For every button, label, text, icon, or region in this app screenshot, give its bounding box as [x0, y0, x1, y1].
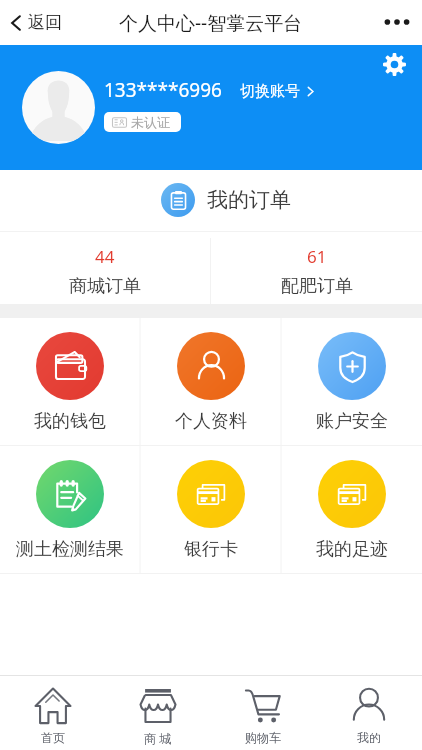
staticText: 我的	[357, 730, 381, 745]
staticText: 商城订单	[69, 275, 141, 298]
button[interactable]: 切换账号	[240, 82, 316, 103]
button[interactable]: 账户安全	[281, 318, 422, 446]
button[interactable]: 返回	[2, 6, 68, 39]
button[interactable]: More options	[378, 4, 416, 42]
button[interactable]: 个人资料	[140, 318, 281, 446]
button[interactable]: Settings	[377, 47, 411, 81]
button[interactable]: 银行卡	[140, 446, 281, 574]
staticText: 商 城	[144, 730, 172, 746]
staticText: 我的订单	[207, 187, 291, 213]
button[interactable]: 未认证	[104, 112, 181, 132]
staticText: 切换账号	[240, 82, 300, 101]
staticText: 个人中心--智掌云平台	[119, 10, 303, 36]
button[interactable]: 61	[211, 238, 422, 304]
staticText: 返回	[28, 12, 62, 33]
button[interactable]: 我的	[316, 676, 422, 750]
staticText: 我的钱包	[34, 410, 106, 433]
staticText: 133****6996	[104, 77, 222, 103]
button[interactable]: 我的订单	[0, 183, 422, 217]
button[interactable]: 首页	[0, 676, 105, 750]
staticText: 配肥订单	[281, 275, 353, 298]
button[interactable]: 购物车	[210, 676, 316, 750]
staticText: 账户安全	[316, 410, 388, 433]
staticText: 未认证	[131, 114, 170, 130]
staticText: 44	[95, 245, 115, 268]
staticText: 我的足迹	[316, 538, 388, 561]
button[interactable]: 测土检测结果	[0, 446, 140, 574]
staticText: 61	[307, 245, 327, 268]
button[interactable]: 44	[0, 238, 210, 304]
staticText: 购物车	[245, 730, 281, 745]
staticText: 测土检测结果	[16, 538, 124, 561]
button[interactable]: 我的钱包	[0, 318, 140, 446]
button[interactable]: 我的足迹	[281, 446, 422, 574]
staticText: 个人资料	[175, 410, 247, 433]
button[interactable]: 商 城	[105, 676, 210, 750]
staticText: 首页	[41, 730, 65, 745]
staticText: 银行卡	[184, 538, 238, 561]
